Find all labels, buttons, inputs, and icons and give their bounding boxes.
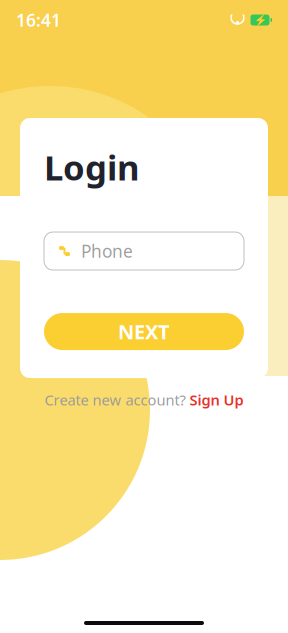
staticText: ⚡: [253, 14, 266, 26]
staticText: Create new account?: [44, 390, 185, 409]
staticText: NEXT: [118, 318, 170, 345]
staticText: Phone: [81, 239, 133, 262]
button[interactable]: Sign Up: [189, 390, 243, 409]
button[interactable]: Phone: [44, 232, 244, 270]
staticText: Sign Up: [189, 390, 243, 409]
staticText: Login: [44, 144, 140, 190]
staticText: 16:41: [16, 8, 61, 31]
button[interactable]: NEXT: [44, 313, 244, 350]
